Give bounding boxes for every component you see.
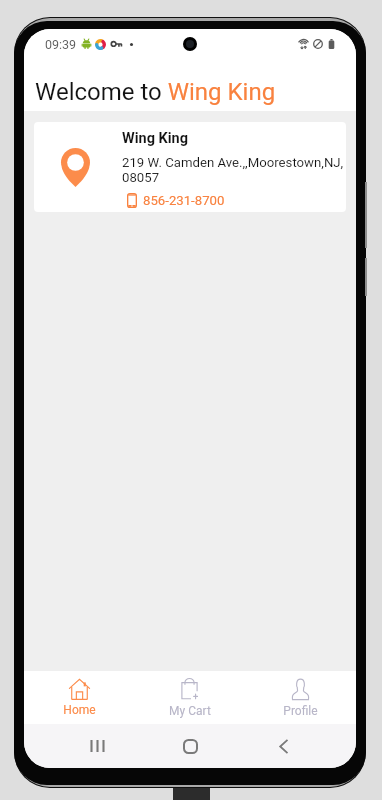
staticText: 219 W. Camden Ave.,,Moorestown,NJ, 08057: [122, 155, 344, 185]
button[interactable]: Recent apps: [50, 724, 144, 768]
button[interactable]: Wing King: [34, 122, 346, 212]
button[interactable]: Home: [24, 671, 134, 724]
button[interactable]: Back: [237, 724, 330, 768]
staticText: Welcome to Wing King: [35, 78, 276, 106]
staticText: 856-231-8700: [143, 193, 225, 208]
button[interactable]: Profile: [245, 671, 356, 724]
staticText: Wing King: [122, 130, 189, 147]
button[interactable]: Home: [144, 724, 237, 768]
staticText: 09:39: [45, 37, 77, 52]
staticText: Profile: [283, 704, 318, 718]
staticText: Home: [63, 703, 96, 717]
staticText: My Cart: [169, 704, 211, 718]
button[interactable]: My Cart: [134, 671, 245, 724]
